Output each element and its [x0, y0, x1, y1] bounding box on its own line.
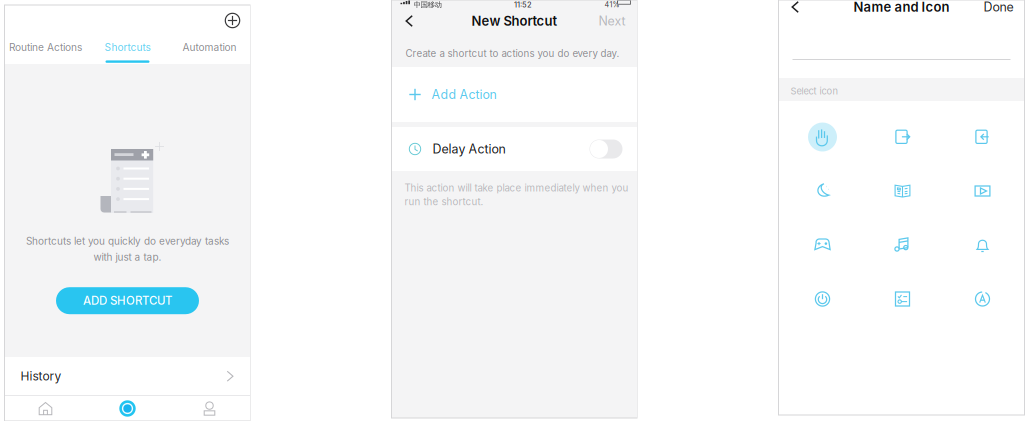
button[interactable]: Next [592, 9, 631, 32]
staticText: Shortcuts [104, 41, 150, 53]
button[interactable]: Done [978, 0, 1018, 15]
button[interactable]: Video [955, 164, 1009, 218]
button[interactable]: Checklist [875, 272, 929, 326]
staticText: run the shortcut. [404, 196, 483, 208]
button[interactable]: Automation [168, 36, 250, 64]
button[interactable]: Sleep [795, 164, 849, 218]
staticText: Create a shortcut to actions you do ever… [405, 48, 619, 59]
button[interactable]: Add [219, 7, 245, 33]
button[interactable]: Back [397, 11, 421, 31]
staticText: Automation [182, 41, 236, 53]
button[interactable]: Game [795, 218, 849, 272]
button[interactable]: Leave [875, 110, 929, 164]
staticText: This action will take place immediately … [404, 182, 628, 194]
staticText: 11:52 [514, 0, 532, 9]
button[interactable]: Delay Action toggle [589, 139, 622, 158]
button[interactable]: Alarm [955, 218, 1009, 272]
staticText: History [20, 369, 61, 383]
staticText: Select icon [790, 85, 838, 97]
staticText: 41% [604, 0, 619, 9]
button[interactable]: Power [795, 272, 849, 326]
staticText: Routine Actions [9, 41, 82, 53]
button[interactable]: Back [784, 0, 806, 14]
staticText: Name and Icon [853, 0, 949, 15]
button[interactable]: Music [875, 218, 929, 272]
button[interactable]: Routine Actions [4, 36, 86, 64]
staticText: Done [983, 0, 1013, 14]
button[interactable]: Arrive [955, 110, 1009, 164]
staticText: 中国移动 [413, 0, 441, 9]
staticText: New Shortcut [471, 13, 557, 29]
button[interactable]: Tap [795, 110, 849, 164]
staticText: with just a tap. [93, 251, 161, 263]
button[interactable]: Shortcuts [86, 396, 168, 421]
staticText: Shortcuts let you quickly do everyday ta… [26, 235, 229, 247]
button[interactable]: History [4, 357, 250, 395]
staticText: Next [598, 13, 625, 28]
button[interactable]: Home [4, 396, 86, 421]
button[interactable]: Profile [168, 396, 250, 421]
button[interactable]: ADD SHORTCUT [56, 287, 199, 314]
staticText: ADD SHORTCUT [83, 294, 172, 308]
button[interactable]: Auto [955, 272, 1009, 326]
button[interactable]: Read [875, 164, 929, 218]
staticText: Add Action [431, 87, 496, 102]
button[interactable]: Add Action [391, 67, 637, 122]
staticText: Delay Action [432, 141, 505, 156]
button[interactable]: Shortcuts [86, 36, 168, 64]
